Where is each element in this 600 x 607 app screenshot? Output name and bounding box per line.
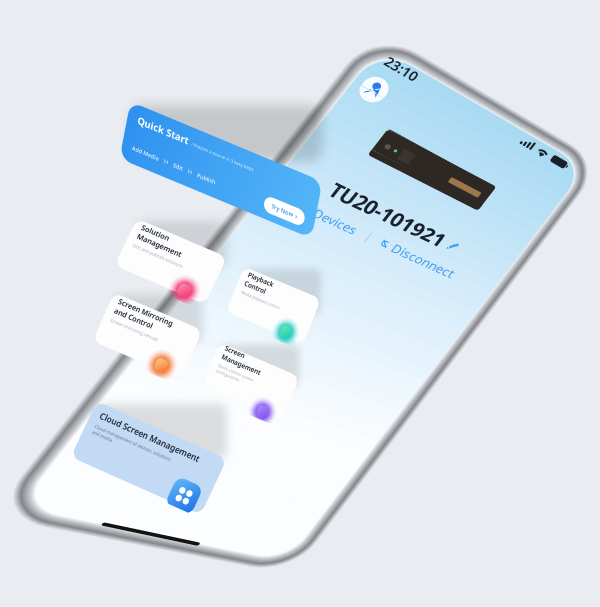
button[interactable]: Devices (77, 152, 169, 179)
staticText: | (185, 232, 195, 257)
button[interactable]: Screen Mirroring (0, 0, 320, 190)
button[interactable]: Playback (0, 0, 320, 190)
staticText: | (185, 153, 195, 178)
staticText: TU20-101921 (95, 218, 291, 260)
staticText: | (185, 271, 195, 296)
button[interactable]: Rename device (297, 189, 317, 211)
staticText: Disconnect (231, 270, 335, 297)
button[interactable]: Disconnect (211, 270, 335, 297)
staticText: Cloud Screen Management (30, 16, 396, 54)
button[interactable]: Rename device (297, 149, 317, 171)
staticText: Try Now (543, 131, 600, 157)
staticText: Disconnect (231, 152, 335, 179)
button[interactable]: Disconnect (211, 192, 335, 218)
button[interactable]: Rename device (297, 228, 317, 250)
button[interactable]: Screen (0, 0, 320, 190)
staticText: Edit (186, 132, 220, 156)
staticText: Disconnect (231, 74, 335, 100)
button[interactable]: Disconnect (211, 74, 335, 100)
staticText: | (185, 114, 195, 139)
staticText: Devices (97, 152, 169, 179)
button[interactable]: Devices (77, 231, 169, 258)
staticText: Devices (97, 270, 169, 297)
button[interactable]: Cloud Screen Management (0, 0, 480, 200)
button[interactable]: Devices (77, 270, 169, 297)
button[interactable]: Disconnect (211, 231, 335, 258)
staticText: Disconnect (231, 113, 335, 140)
staticText: Devices (97, 231, 169, 258)
button[interactable]: Devices (77, 113, 169, 140)
staticText: Disconnect (231, 192, 335, 218)
button[interactable]: Try Now (517, 117, 600, 171)
button[interactable]: Disconnect (211, 113, 335, 140)
button[interactable]: Disconnect (211, 152, 335, 179)
staticText: TU20-101921 (95, 100, 291, 142)
button[interactable]: Solution (0, 0, 320, 190)
staticText: TU20-101921 (95, 139, 291, 182)
button[interactable]: Rename device (297, 110, 317, 132)
staticText: Publish (273, 132, 339, 156)
staticText: Add Media (36, 132, 133, 156)
staticText: TU20-101921 (95, 179, 291, 221)
staticText: / Publish a source in 3 easy steps (234, 44, 459, 63)
staticText: Disconnect (231, 231, 335, 258)
staticText: Devices (97, 113, 169, 140)
